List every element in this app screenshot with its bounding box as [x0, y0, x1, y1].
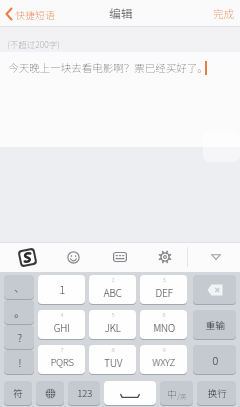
button[interactable]: ! — [4, 350, 34, 374]
staticText: 快捷短语 — [15, 7, 55, 21]
staticText: 符 — [13, 386, 23, 400]
staticText: 4 — [60, 310, 64, 319]
button[interactable] — [193, 275, 236, 304]
staticText: MNO — [153, 320, 175, 334]
button[interactable] — [15, 245, 39, 269]
button[interactable]: 4 — [38, 310, 85, 339]
staticText: PQRS — [50, 355, 74, 369]
staticText: DEF — [156, 285, 174, 299]
staticText: 今天晚上一块去看电影啊？票已经买好了。 — [8, 60, 208, 75]
staticText: 9 — [162, 345, 166, 354]
button[interactable] — [109, 246, 131, 268]
staticText: 重输 — [205, 318, 225, 332]
staticText: 3 — [162, 275, 166, 284]
button[interactable]: 3 — [140, 275, 187, 304]
button[interactable]: 快捷短语 — [5, 7, 55, 21]
button[interactable] — [36, 381, 64, 405]
staticText: JKL — [105, 320, 122, 334]
staticText: ABC — [103, 285, 122, 299]
staticText: 0 — [213, 352, 219, 368]
button[interactable]: ? — [4, 325, 34, 349]
button[interactable]: 重输 — [193, 310, 236, 339]
button[interactable] — [154, 246, 176, 268]
button[interactable]: 。 — [4, 300, 34, 324]
button[interactable] — [62, 246, 84, 268]
staticText: WXYZ — [152, 355, 175, 369]
staticText: 6 — [162, 310, 166, 319]
staticText: ABC — [104, 285, 123, 299]
staticText: 、 — [14, 280, 24, 294]
staticText: 编辑 — [110, 5, 133, 22]
button[interactable]: 6 — [140, 310, 187, 339]
button[interactable] — [104, 381, 156, 405]
button[interactable]: 9 — [140, 345, 187, 374]
staticText: WXYZ — [153, 355, 176, 369]
staticText: 、 — [15, 280, 25, 294]
button[interactable]: 2 — [89, 275, 136, 304]
staticText: ? — [17, 330, 22, 344]
button[interactable] — [205, 246, 227, 268]
staticText: 7 — [60, 345, 64, 354]
staticText: DEF — [155, 285, 173, 299]
staticText: 1 — [59, 281, 65, 298]
staticText: GHI — [53, 320, 70, 334]
button[interactable]: 7 — [38, 345, 85, 374]
button[interactable]: 0 — [193, 345, 236, 374]
staticText: ? — [17, 330, 22, 344]
staticText: GHI — [53, 320, 70, 334]
staticText: 123 — [77, 386, 92, 400]
staticText: 换行 — [208, 386, 228, 400]
button[interactable]: 符 — [4, 381, 32, 405]
staticText: 符 — [14, 386, 24, 400]
button[interactable]: 5 — [89, 310, 136, 339]
staticText: 编辑 — [109, 5, 132, 22]
staticText: MNO — [154, 320, 176, 334]
button[interactable]: 换行 — [197, 381, 236, 405]
button[interactable]: 完成 — [213, 6, 234, 21]
staticText: 中 — [167, 386, 177, 400]
staticText: ! — [18, 355, 21, 369]
staticText: TUV — [104, 355, 122, 369]
staticText: ! — [18, 355, 21, 369]
staticText: 5 — [111, 310, 115, 319]
staticText: /英 — [177, 391, 187, 400]
staticText: 8 — [111, 345, 115, 354]
staticText: 重输 — [206, 318, 226, 332]
staticText: TUV — [105, 355, 123, 369]
button[interactable]: 今天晚上一块去看电影啊？票已经买好了。 — [0, 52, 240, 147]
staticText: 换行 — [207, 386, 227, 400]
staticText: 0 — [212, 352, 218, 368]
staticText: PQRS — [50, 355, 74, 369]
staticText: 。 — [15, 305, 25, 319]
button[interactable]: 8 — [89, 345, 136, 374]
staticText: 。 — [14, 305, 24, 319]
button[interactable]: 中 — [160, 381, 193, 405]
button[interactable]: 123 — [68, 381, 100, 405]
staticText: JKL — [104, 320, 121, 334]
staticText: 1 — [59, 281, 65, 298]
staticText: 2 — [111, 275, 115, 284]
staticText: 完成 — [213, 6, 234, 21]
staticText: 123 — [78, 386, 93, 400]
button[interactable]: 1 — [38, 275, 85, 304]
staticText: (不超过200字) — [7, 38, 60, 50]
button[interactable]: 、 — [4, 275, 34, 299]
